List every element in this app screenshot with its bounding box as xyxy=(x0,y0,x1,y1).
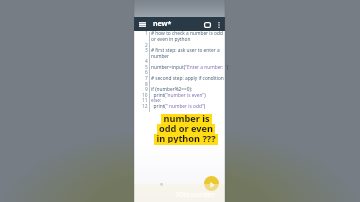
staticText: else: xyxy=(151,97,162,104)
staticText: in python ??? xyxy=(156,132,216,143)
staticText: 3 xyxy=(145,47,148,54)
button[interactable]: More options xyxy=(214,20,223,29)
staticText: 11 xyxy=(142,97,148,104)
staticText: 1 xyxy=(145,30,148,37)
staticText: 8 xyxy=(145,81,148,88)
staticText: 7 xyxy=(145,75,148,82)
staticText: # first step: ask user to enter a xyxy=(151,47,220,54)
staticText: number xyxy=(151,53,170,60)
staticText: 2 xyxy=(145,42,148,49)
staticText: or even in python xyxy=(151,36,191,43)
staticText: if (number%2==0): xyxy=(151,86,193,93)
staticText: number is xyxy=(163,112,210,122)
staticText: print(" number is odd") xyxy=(151,103,206,110)
staticText: print("number is even") xyxy=(151,92,206,99)
staticText: 6 xyxy=(145,69,148,76)
staticText: # second step: apply if condition xyxy=(151,75,224,82)
staticText: odd or even xyxy=(159,122,213,132)
staticText: 10 xyxy=(142,92,148,99)
staticText: # how to check a number is odd xyxy=(151,30,223,37)
staticText: number=input("Enter a number: ") xyxy=(151,64,229,71)
staticText: 4 xyxy=(145,58,148,65)
button[interactable]: Tabs xyxy=(202,19,213,30)
button[interactable]: Menu xyxy=(137,19,148,30)
button[interactable]: Record xyxy=(204,176,219,191)
staticText: 12 xyxy=(142,103,148,110)
staticText: XRecorder xyxy=(176,189,215,199)
staticText: 9 xyxy=(145,86,148,93)
staticText: new* xyxy=(153,19,172,29)
staticText: 5 xyxy=(145,64,148,71)
